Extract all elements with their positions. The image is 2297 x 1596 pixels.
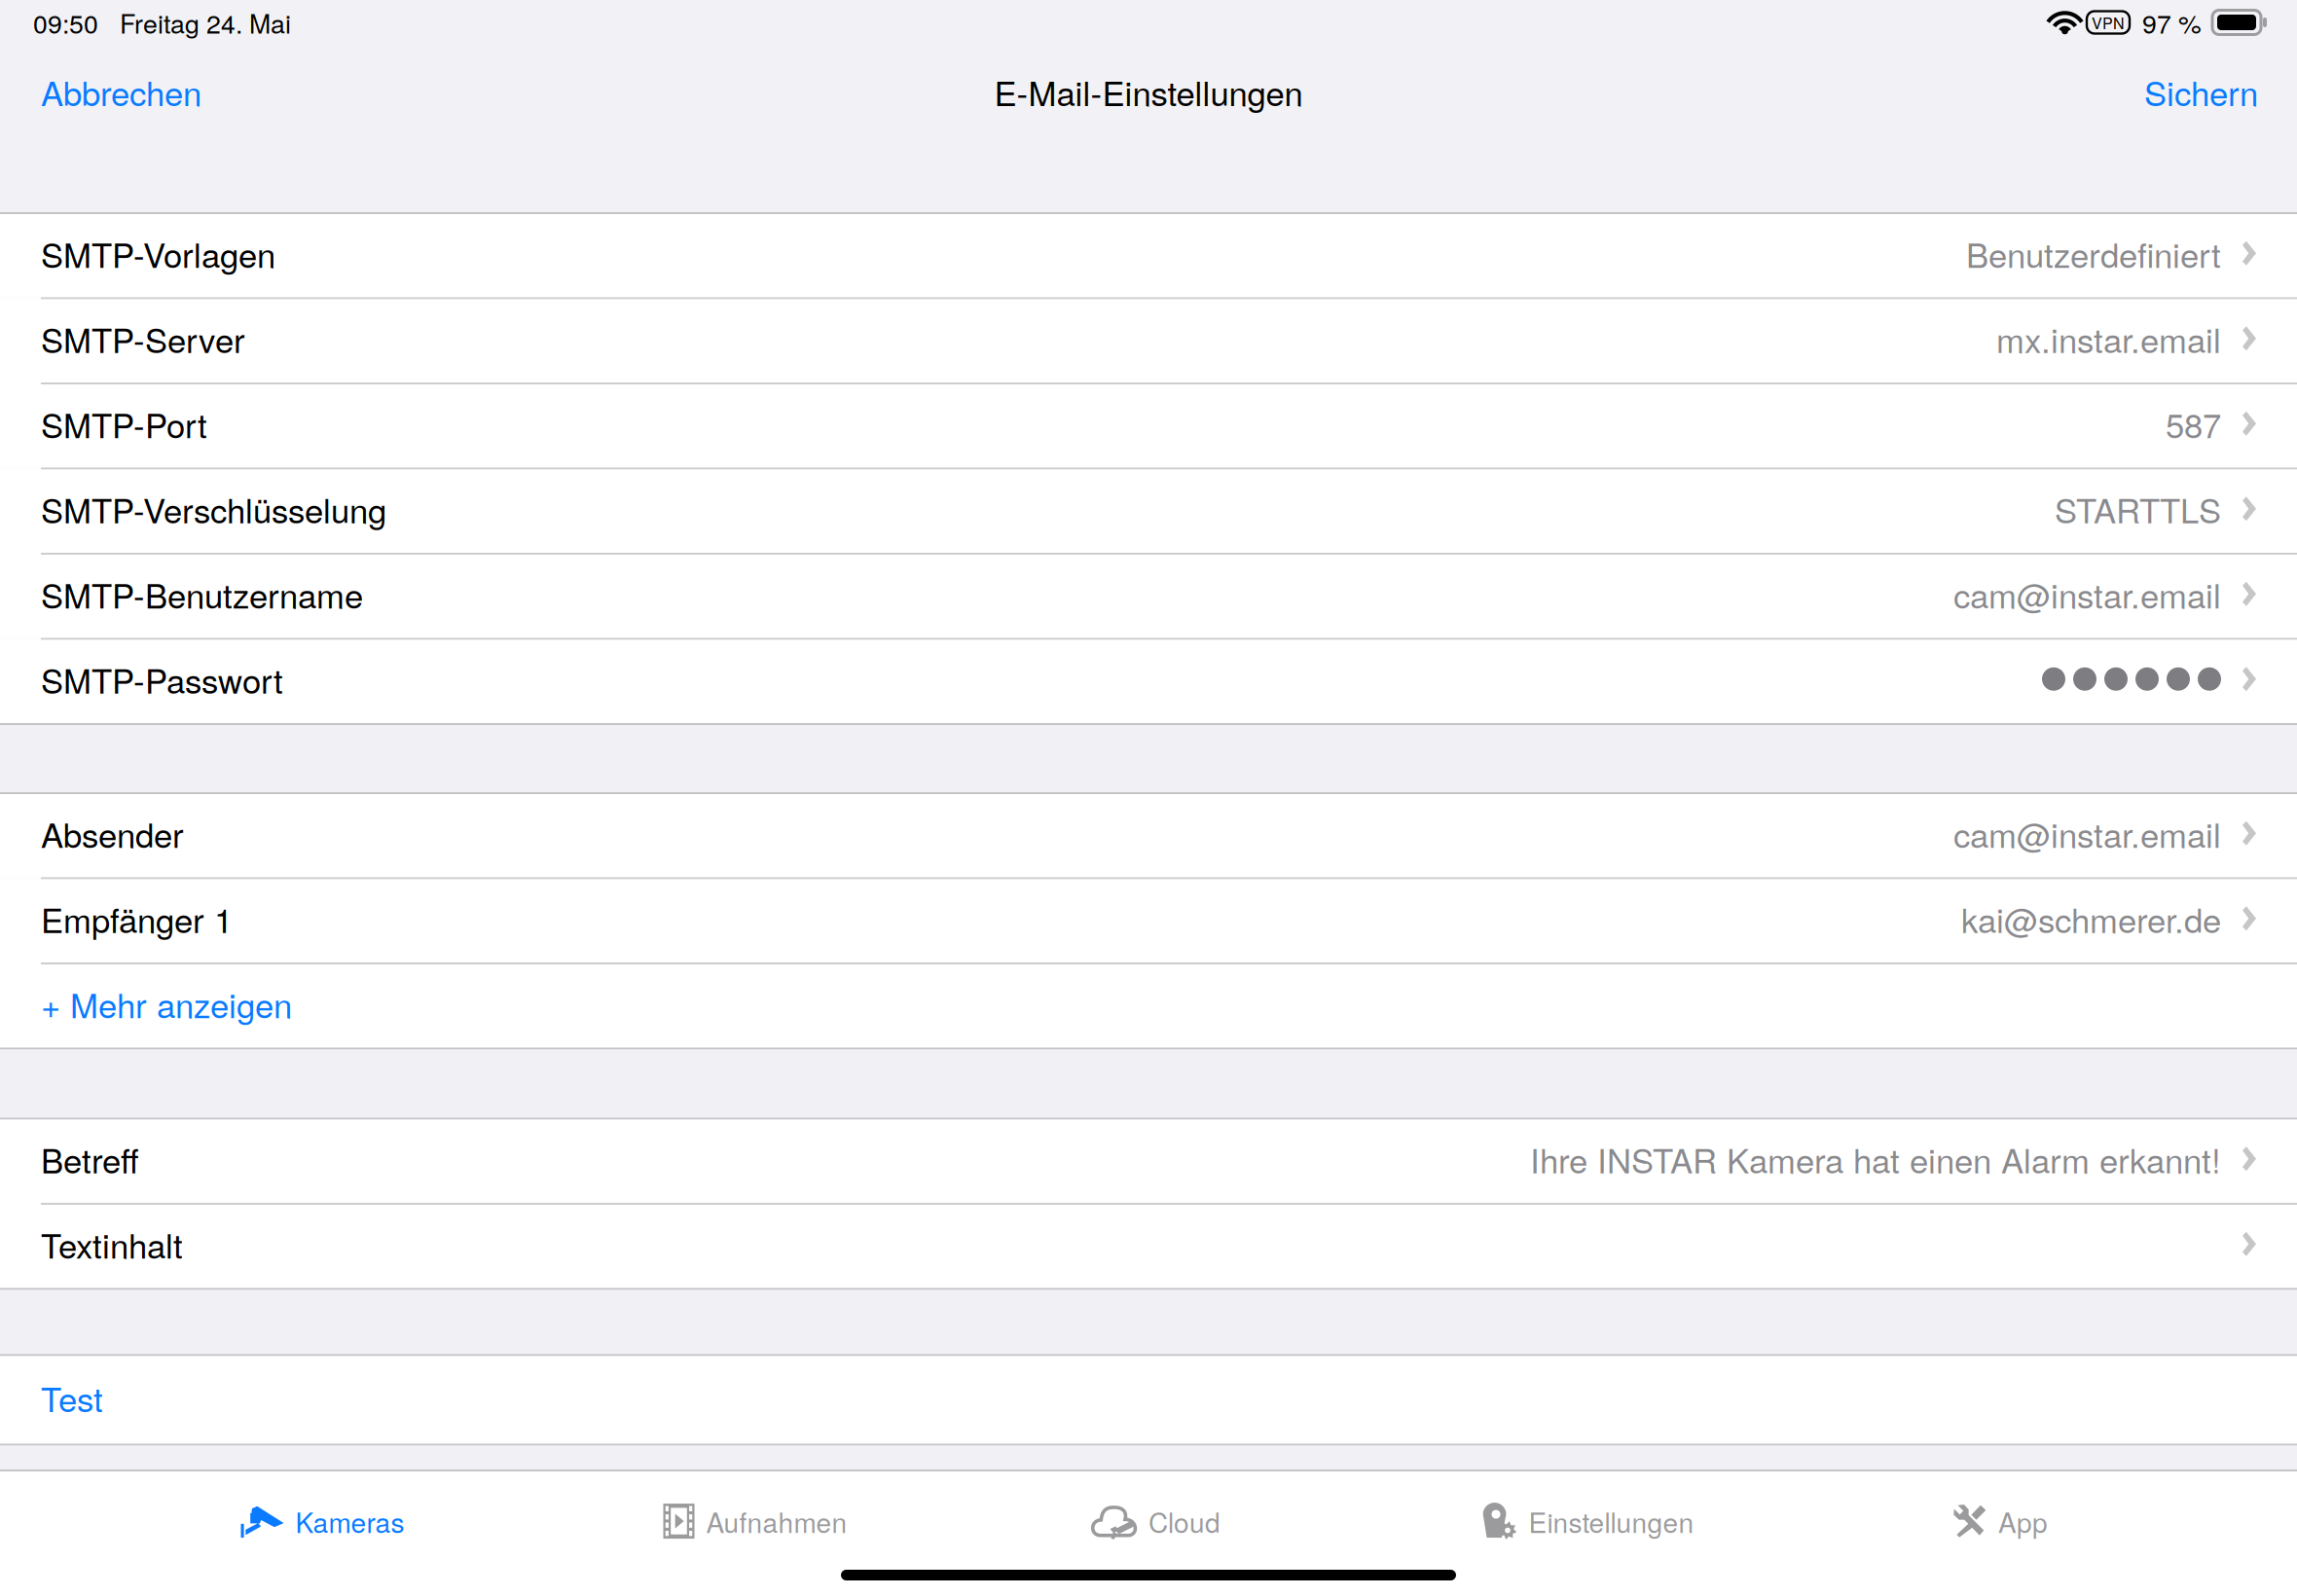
staticText: Aufnahmen bbox=[706, 1502, 847, 1541]
button[interactable]: Empfänger 1 bbox=[0, 879, 2297, 962]
staticText: cam@instar.email bbox=[1953, 809, 2221, 857]
button[interactable]: Textinhalt bbox=[0, 1205, 2297, 1288]
staticText: Cloud bbox=[1148, 1502, 1221, 1541]
button[interactable]: Einstellungen bbox=[1286, 1470, 1888, 1542]
button[interactable]: Test bbox=[0, 1356, 2297, 1444]
staticText: Absender bbox=[41, 809, 184, 857]
staticText: SMTP-Passwort bbox=[41, 655, 283, 703]
button[interactable]: Aufnahmen bbox=[484, 1470, 1027, 1542]
staticText: SMTP-Verschlüsselung bbox=[41, 485, 386, 533]
staticText: Empfänger 1 bbox=[41, 894, 233, 943]
button[interactable]: SMTP-Vorlagen bbox=[0, 214, 2297, 297]
staticText: Benutzerdefiniert bbox=[1966, 229, 2221, 277]
staticText: + Mehr anzeigen bbox=[41, 979, 292, 1028]
staticText: SMTP-Vorlagen bbox=[41, 229, 275, 277]
staticText: mx.instar.email bbox=[1996, 314, 2221, 363]
button[interactable]: SMTP-Benutzername bbox=[0, 555, 2297, 638]
staticText: Betreff bbox=[41, 1135, 139, 1183]
button[interactable]: SMTP-Passwort bbox=[0, 640, 2297, 723]
staticText: SMTP-Port bbox=[41, 399, 207, 448]
staticText: STARTTLS bbox=[2055, 485, 2221, 533]
button[interactable]: Sichern bbox=[2121, 54, 2258, 129]
staticText: Kameras bbox=[295, 1502, 404, 1541]
button[interactable]: + Mehr anzeigen bbox=[0, 964, 2297, 1048]
staticText: VPN bbox=[2092, 11, 2125, 33]
staticText: cam@instar.email bbox=[1953, 570, 2221, 618]
button[interactable]: Abbrechen bbox=[41, 54, 225, 129]
staticText: SMTP-Benutzername bbox=[41, 570, 363, 618]
staticText: E-Mail-Einstellungen bbox=[994, 67, 1303, 116]
staticText: Sichern bbox=[2144, 67, 2258, 116]
button[interactable]: SMTP-Server bbox=[0, 299, 2297, 382]
staticText: Test bbox=[41, 1373, 103, 1422]
staticText: Textinhalt bbox=[41, 1220, 183, 1268]
button[interactable]: Kameras bbox=[162, 1470, 484, 1542]
button[interactable]: App bbox=[1888, 1470, 2113, 1542]
button[interactable]: Cloud bbox=[1027, 1470, 1286, 1542]
staticText: SMTP-Server bbox=[41, 314, 245, 363]
button[interactable]: SMTP-Port bbox=[0, 384, 2297, 468]
button[interactable]: SMTP-Verschlüsselung bbox=[0, 470, 2297, 553]
staticText: App bbox=[1998, 1502, 2048, 1541]
staticText: Abbrechen bbox=[41, 67, 201, 116]
staticText: 587 bbox=[2166, 399, 2221, 448]
staticText: Freitag 24. Mai bbox=[120, 4, 291, 41]
button[interactable]: Absender bbox=[0, 794, 2297, 877]
staticText: kai@schmerer.de bbox=[1961, 894, 2221, 943]
staticText: 97 % bbox=[2142, 4, 2202, 41]
staticText: Ihre INSTAR Kamera hat einen Alarm erkan… bbox=[1530, 1135, 2221, 1183]
staticText: Einstellungen bbox=[1529, 1502, 1694, 1541]
button[interactable]: Betreff bbox=[0, 1120, 2297, 1203]
staticText: 09:50 bbox=[33, 4, 98, 41]
